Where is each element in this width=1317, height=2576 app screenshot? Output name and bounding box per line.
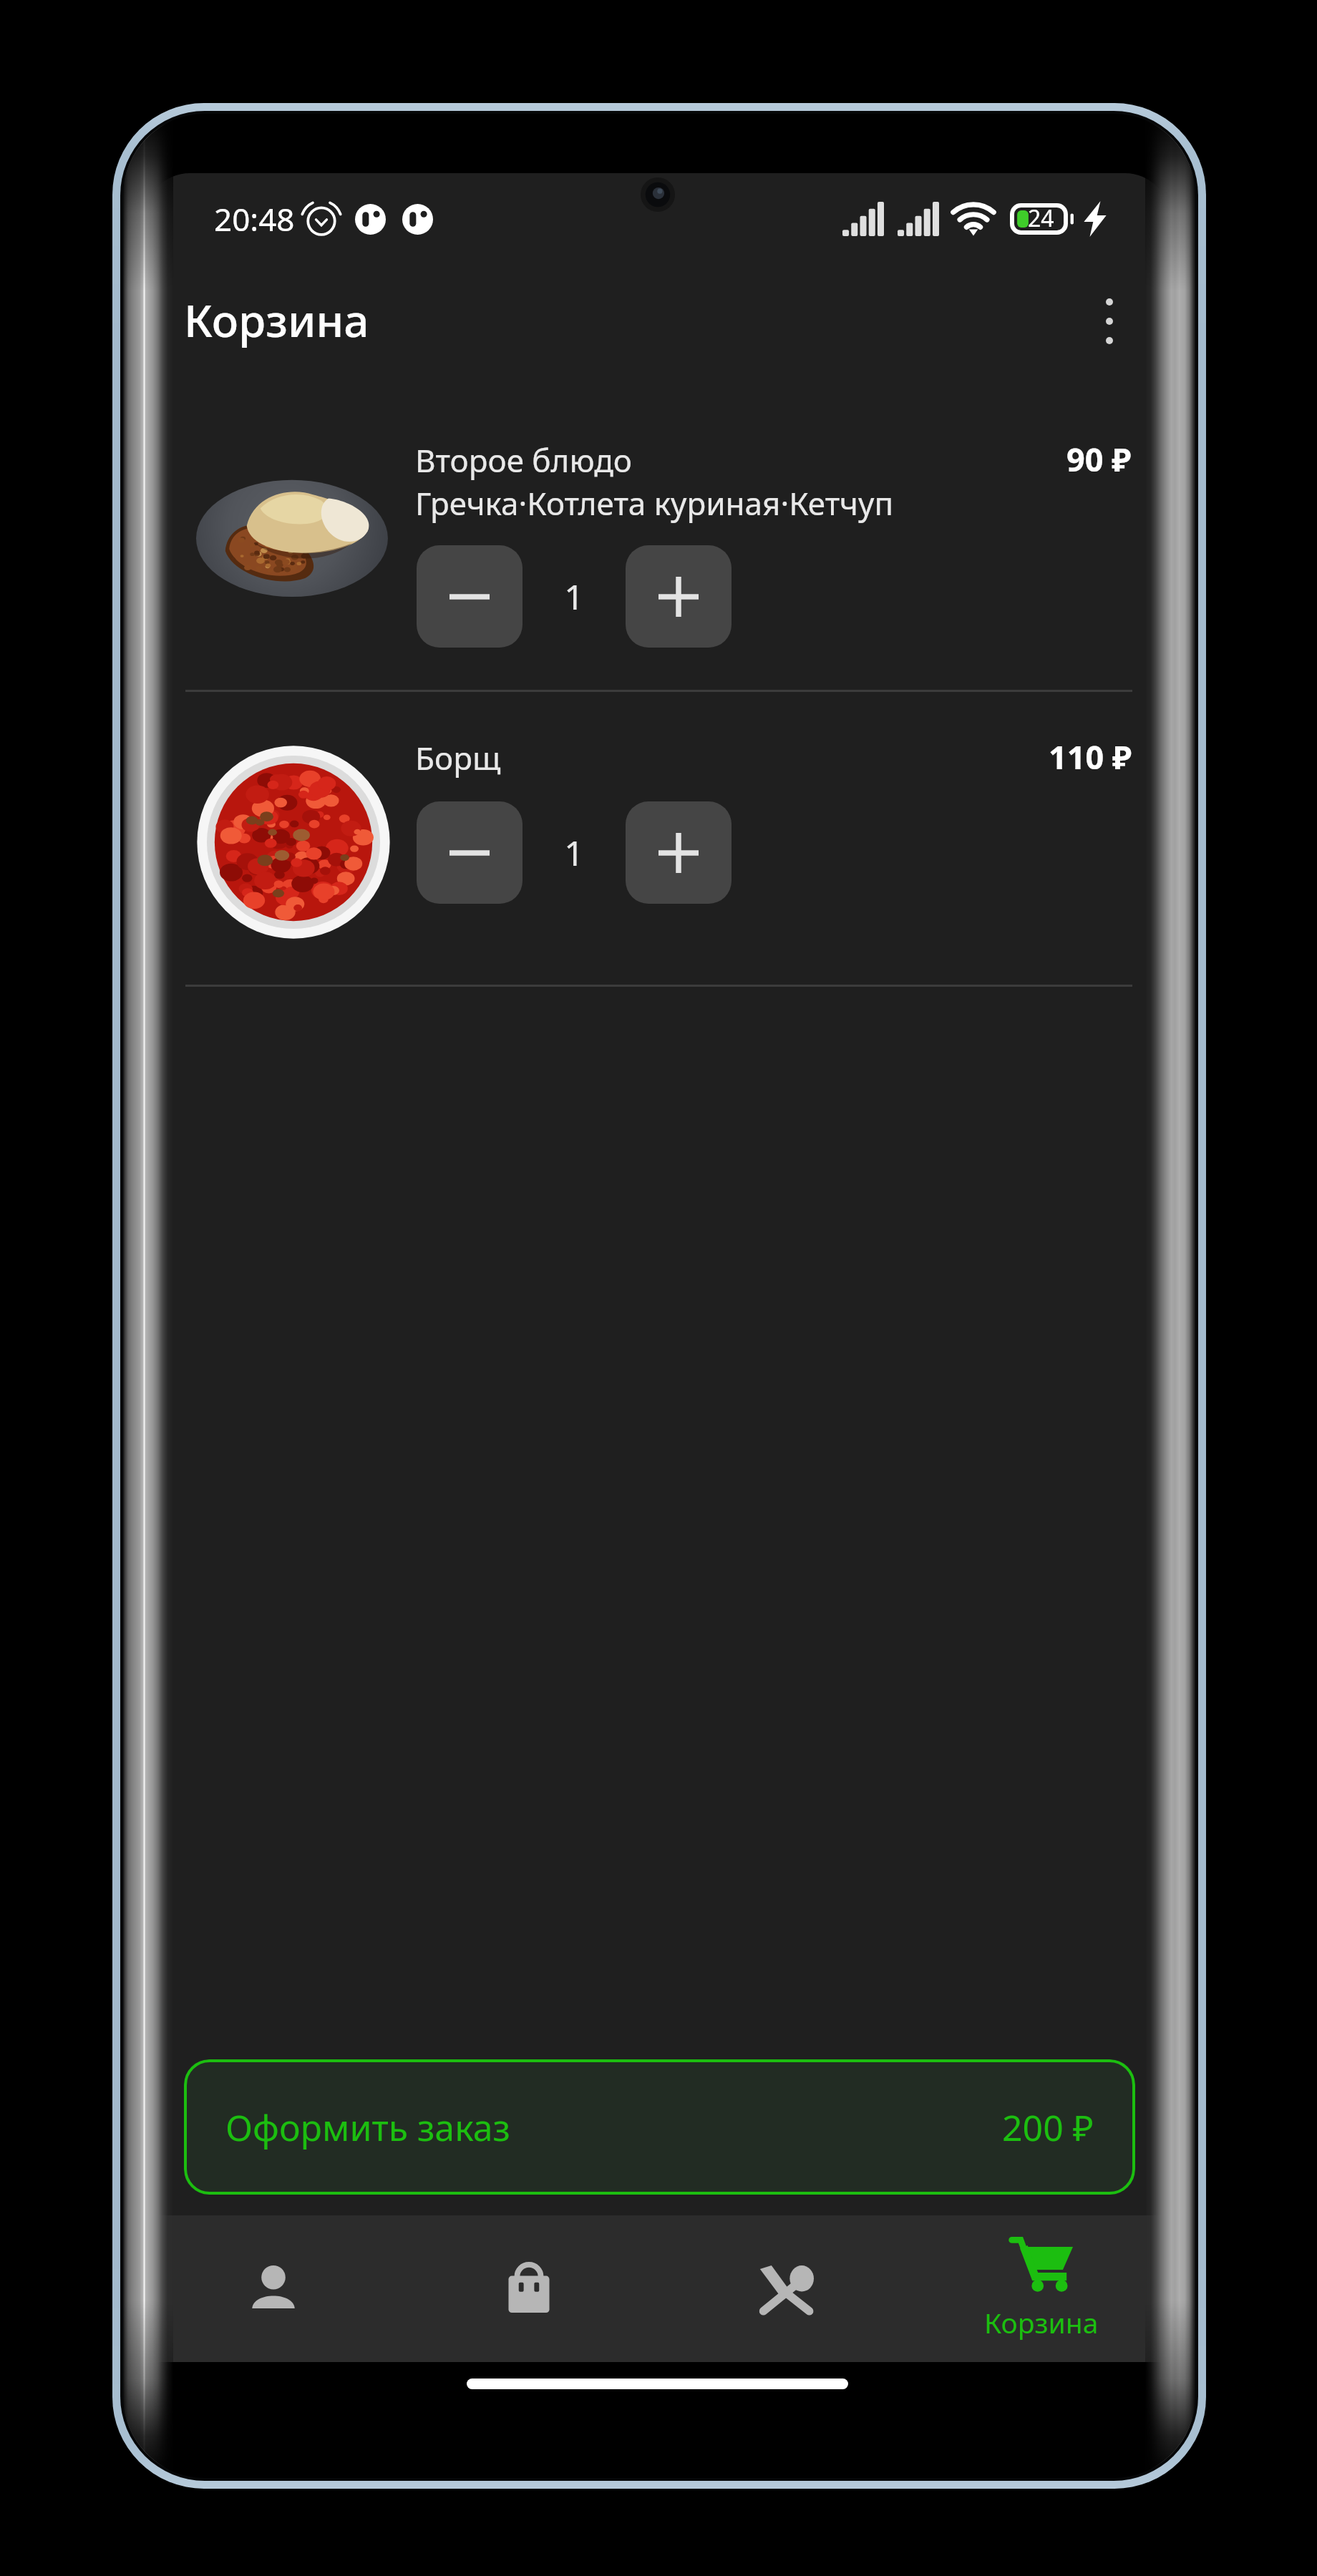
staticText: 200 ₽ — [1002, 2103, 1094, 2152]
staticText: 1 — [564, 573, 584, 620]
button[interactable]: Борщ — [145, 692, 1170, 987]
staticText: 24 — [1028, 203, 1054, 234]
button[interactable]: Корзина — [913, 2215, 1170, 2362]
staticText: 1 — [564, 829, 584, 876]
button[interactable]: Второе блюдо — [145, 397, 1170, 692]
button[interactable]: Increase quantity — [626, 801, 732, 904]
button[interactable]: Decrease quantity — [417, 545, 523, 648]
button[interactable]: Оформить заказ — [184, 2059, 1135, 2195]
staticText: 20:48 — [214, 197, 295, 240]
staticText: 110 ₽ — [1049, 735, 1132, 779]
staticText: Второе блюдо — [415, 439, 632, 482]
button[interactable]: Increase quantity — [626, 545, 732, 648]
button[interactable]: More options — [1063, 275, 1156, 368]
button[interactable]: Menu — [657, 2215, 913, 2362]
staticText: 90 ₽ — [1066, 437, 1132, 481]
staticText: Корзина — [184, 290, 369, 350]
staticText: Борщ — [415, 736, 501, 779]
button[interactable]: Orders — [401, 2215, 657, 2362]
button[interactable]: Profile — [145, 2215, 401, 2362]
button[interactable]: Decrease quantity — [417, 801, 523, 904]
staticText: Гречка·Котлета куриная·Кетчуп — [415, 482, 894, 525]
staticText: Корзина — [984, 2303, 1099, 2341]
staticText: Оформить заказ — [225, 2103, 510, 2152]
